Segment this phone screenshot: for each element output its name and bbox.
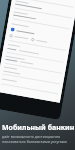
staticText: Мобильный банкинг bbox=[2, 123, 75, 133]
staticText: даёт возможность дистанционно пользовать… bbox=[2, 134, 67, 144]
